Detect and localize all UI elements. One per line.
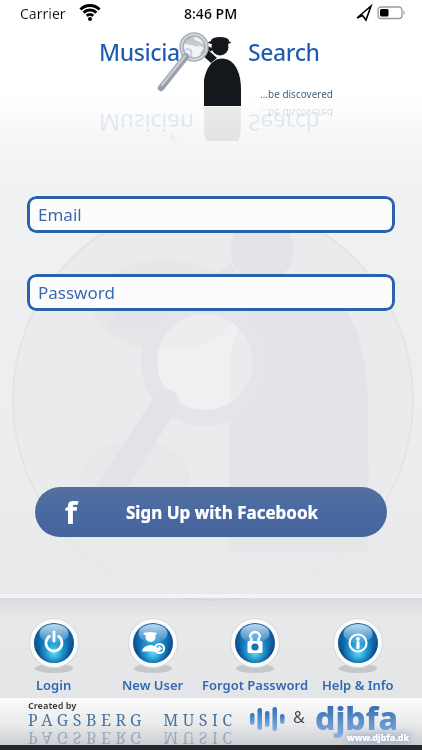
staticText: 8:46 PM [184,4,238,23]
button[interactable]: Help & Info [303,614,413,698]
staticText: ...be discovered [248,106,333,120]
button[interactable]: Login [0,614,109,698]
staticText: Carrier [20,4,66,23]
staticText: & [293,706,305,728]
button[interactable]: Password [27,274,395,311]
staticText: Forgot Password [202,676,309,694]
staticText: Musician [99,36,194,67]
staticText: f [65,491,77,533]
staticText: Created by [28,699,77,711]
button[interactable]: New User [98,614,208,698]
staticText: djbfa [315,696,398,740]
staticText: New User [122,676,184,694]
staticText: www.djbfa.dk [347,731,410,743]
button[interactable]: Email [27,196,395,233]
staticText: Search [248,108,320,139]
staticText: Sign Up with Facebook [126,501,319,524]
staticText: Help & Info [322,676,394,694]
staticText: PAGSBERG MUSIC [28,709,237,731]
staticText: Email [38,203,82,226]
staticText: ...be discovered [248,87,333,101]
staticText: Musician [99,108,194,139]
staticText: Search [248,36,320,67]
staticText: Password [38,281,115,304]
staticText: PAGSBERG MUSIC [28,727,237,749]
button[interactable]: f [35,487,387,537]
button[interactable]: Forgot Password [200,614,310,698]
staticText: Login [36,676,72,694]
